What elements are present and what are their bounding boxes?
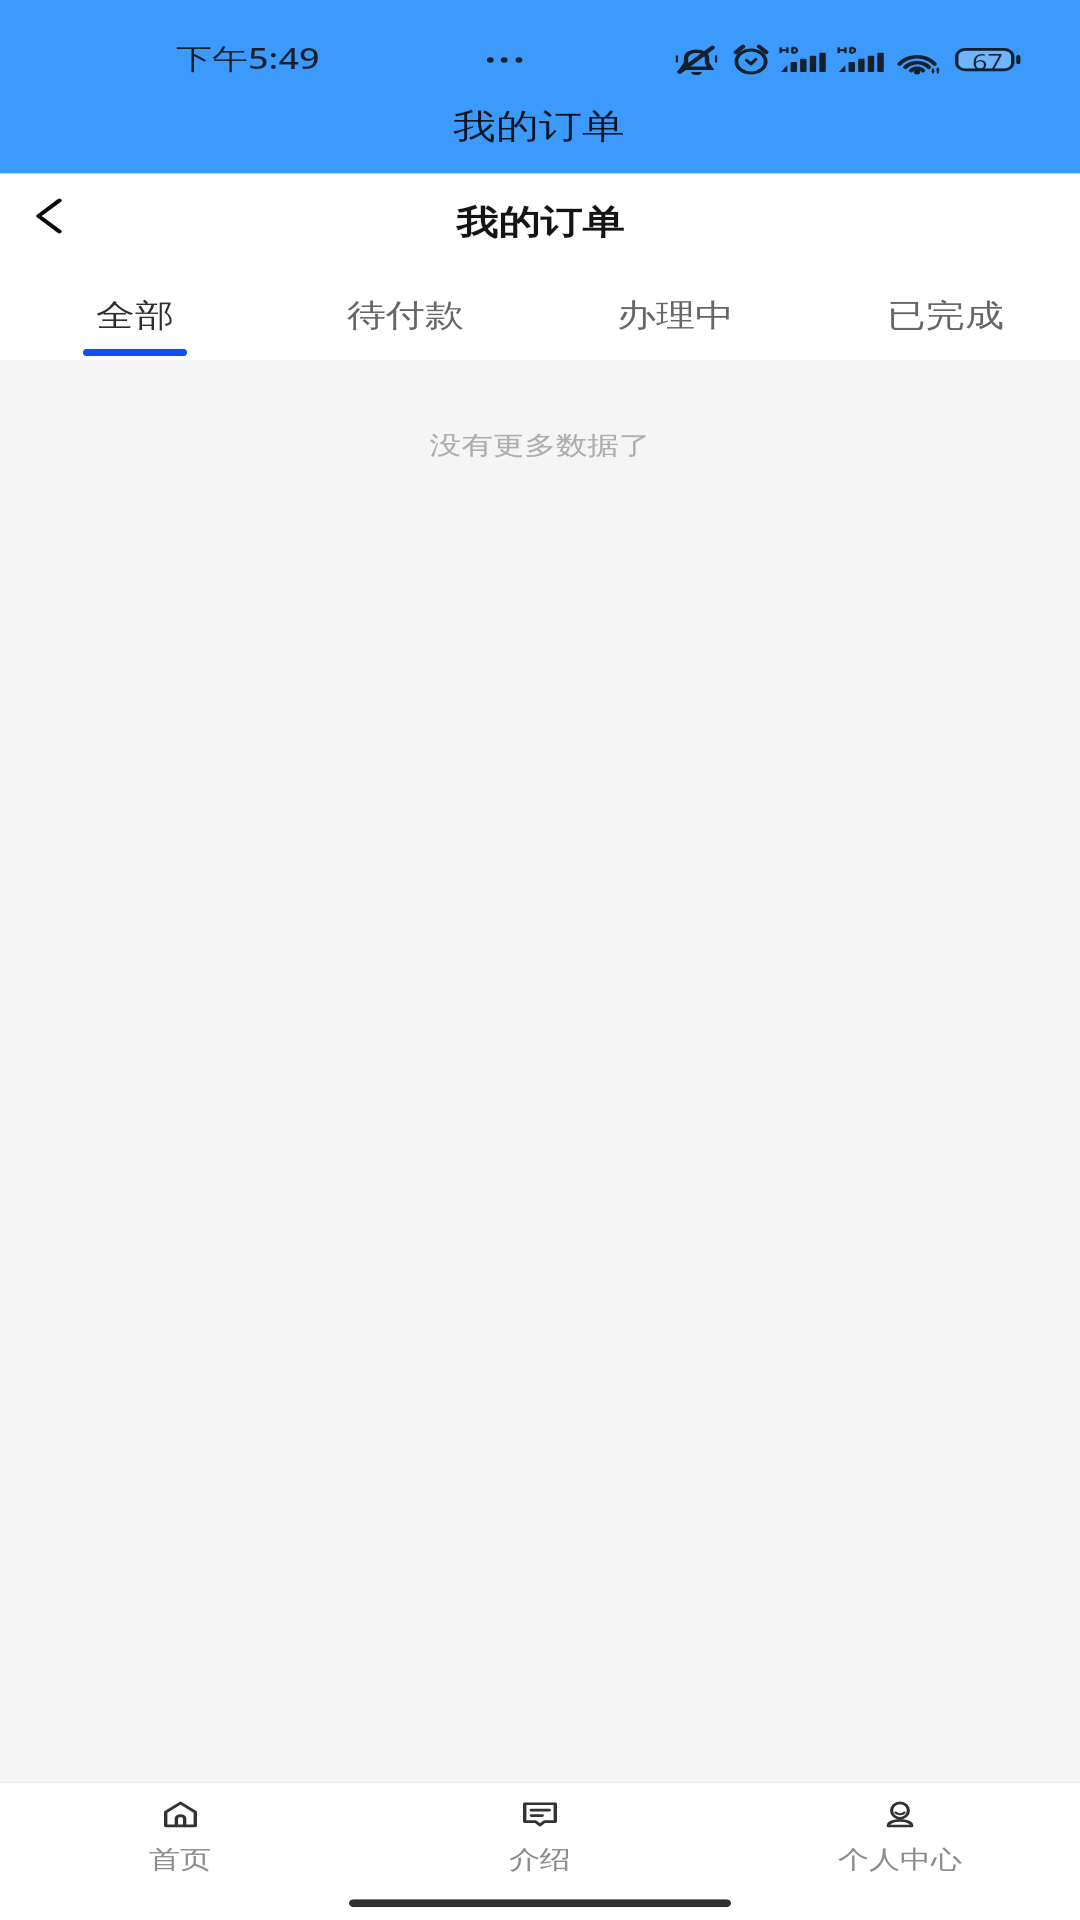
staticText: 个人中心 <box>838 1844 962 1875</box>
staticText: 67 <box>972 46 1003 76</box>
staticText: 没有更多数据了 <box>430 430 651 462</box>
staticText: 首页 <box>149 1844 211 1875</box>
button[interactable]: 首页 <box>0 1783 360 1882</box>
staticText: 下午5:49 <box>176 38 320 78</box>
button[interactable]: 全部 <box>0 264 270 360</box>
staticText: 待付款 <box>347 295 464 334</box>
button[interactable]: 待付款 <box>270 264 540 360</box>
button[interactable]: 办理中 <box>540 264 810 360</box>
staticText: 已完成 <box>887 295 1004 334</box>
button[interactable]: 个人中心 <box>720 1783 1080 1882</box>
staticText: 全部 <box>96 295 174 334</box>
button[interactable]: 已完成 <box>810 264 1080 360</box>
button[interactable]: 介绍 <box>360 1783 720 1882</box>
staticText: 介绍 <box>509 1844 571 1875</box>
staticText: 办理中 <box>617 295 734 334</box>
staticText: 我的订单 <box>453 106 625 149</box>
staticText: 我的订单 <box>456 202 624 245</box>
button[interactable]: Back <box>20 185 98 247</box>
